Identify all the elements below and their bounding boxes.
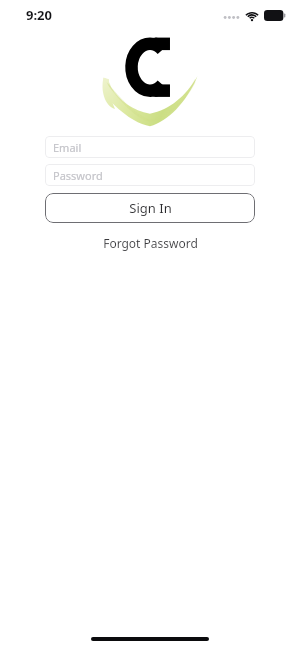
button[interactable]: Password (45, 164, 255, 186)
button[interactable]: Forgot Password (45, 232, 255, 254)
staticText: Password (53, 168, 103, 183)
staticText: 9:20 (26, 6, 52, 24)
staticText: Email (53, 140, 82, 155)
button[interactable]: Sign In (45, 193, 255, 223)
staticText: Sign In (129, 199, 172, 217)
staticText: Forgot Password (103, 235, 198, 251)
button[interactable]: Email (45, 136, 255, 158)
